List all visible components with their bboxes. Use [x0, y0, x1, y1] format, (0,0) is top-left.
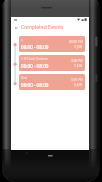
staticText: a	[21, 38, 23, 42]
staticText: 3 JUN	[74, 45, 83, 49]
staticText: 08:00 - 08:00	[21, 63, 49, 69]
staticText: 08:00 - 08:00	[21, 44, 49, 50]
staticText: 3 JUN	[74, 64, 83, 68]
staticText: 3 O'Clock Teatime	[21, 57, 48, 61]
staticText: 3:00 PM	[71, 59, 83, 63]
staticText: 3:01 PM	[71, 78, 83, 82]
button[interactable]: 3 O'Clock Teatime	[19, 55, 85, 71]
button[interactable]: a	[19, 36, 85, 52]
button[interactable]: Back	[11, 22, 21, 33]
staticText: 3 JUN	[74, 83, 83, 87]
staticText: Completed Events	[21, 24, 64, 31]
button[interactable]: Test	[19, 74, 85, 90]
staticText: Test	[21, 76, 28, 80]
staticText: 03:00 PM	[69, 40, 83, 44]
staticText: 08:00 - 08:00	[21, 82, 49, 88]
